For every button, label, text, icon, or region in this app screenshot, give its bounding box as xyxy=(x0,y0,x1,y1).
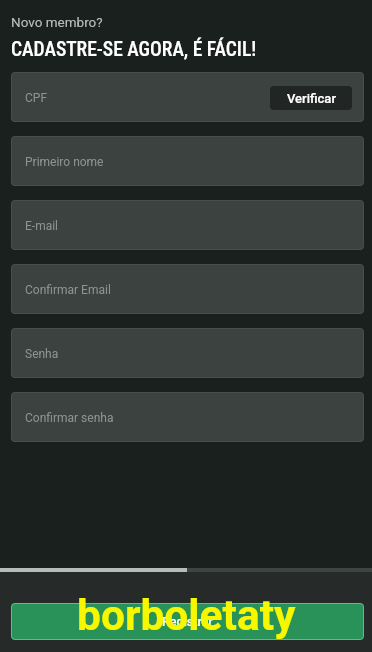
staticText: Confirmar senha xyxy=(25,411,114,425)
staticText: CADASTRE-SE AGORA, É FÁCIL! xyxy=(11,38,257,61)
staticText: Primeiro nome xyxy=(25,155,104,169)
button[interactable]: CPF xyxy=(11,72,364,122)
staticText: Senha xyxy=(25,347,59,361)
button[interactable]: Primeiro nome xyxy=(11,136,364,186)
button[interactable]: E-mail xyxy=(11,200,364,250)
staticText: E-mail xyxy=(25,219,59,233)
button[interactable]: Verificar xyxy=(270,86,352,110)
staticText: Verificar xyxy=(287,91,336,106)
staticText: Confirmar Email xyxy=(25,283,111,297)
staticText: borboletaty xyxy=(77,591,296,641)
staticText: Novo membro? xyxy=(11,14,103,30)
button[interactable]: Senha xyxy=(11,328,364,378)
button[interactable]: Registrar xyxy=(11,603,364,640)
staticText: CPF xyxy=(25,91,48,105)
button[interactable]: Confirmar senha xyxy=(11,392,364,442)
staticText: Registrar xyxy=(162,614,213,629)
button[interactable]: Confirmar Email xyxy=(11,264,364,314)
